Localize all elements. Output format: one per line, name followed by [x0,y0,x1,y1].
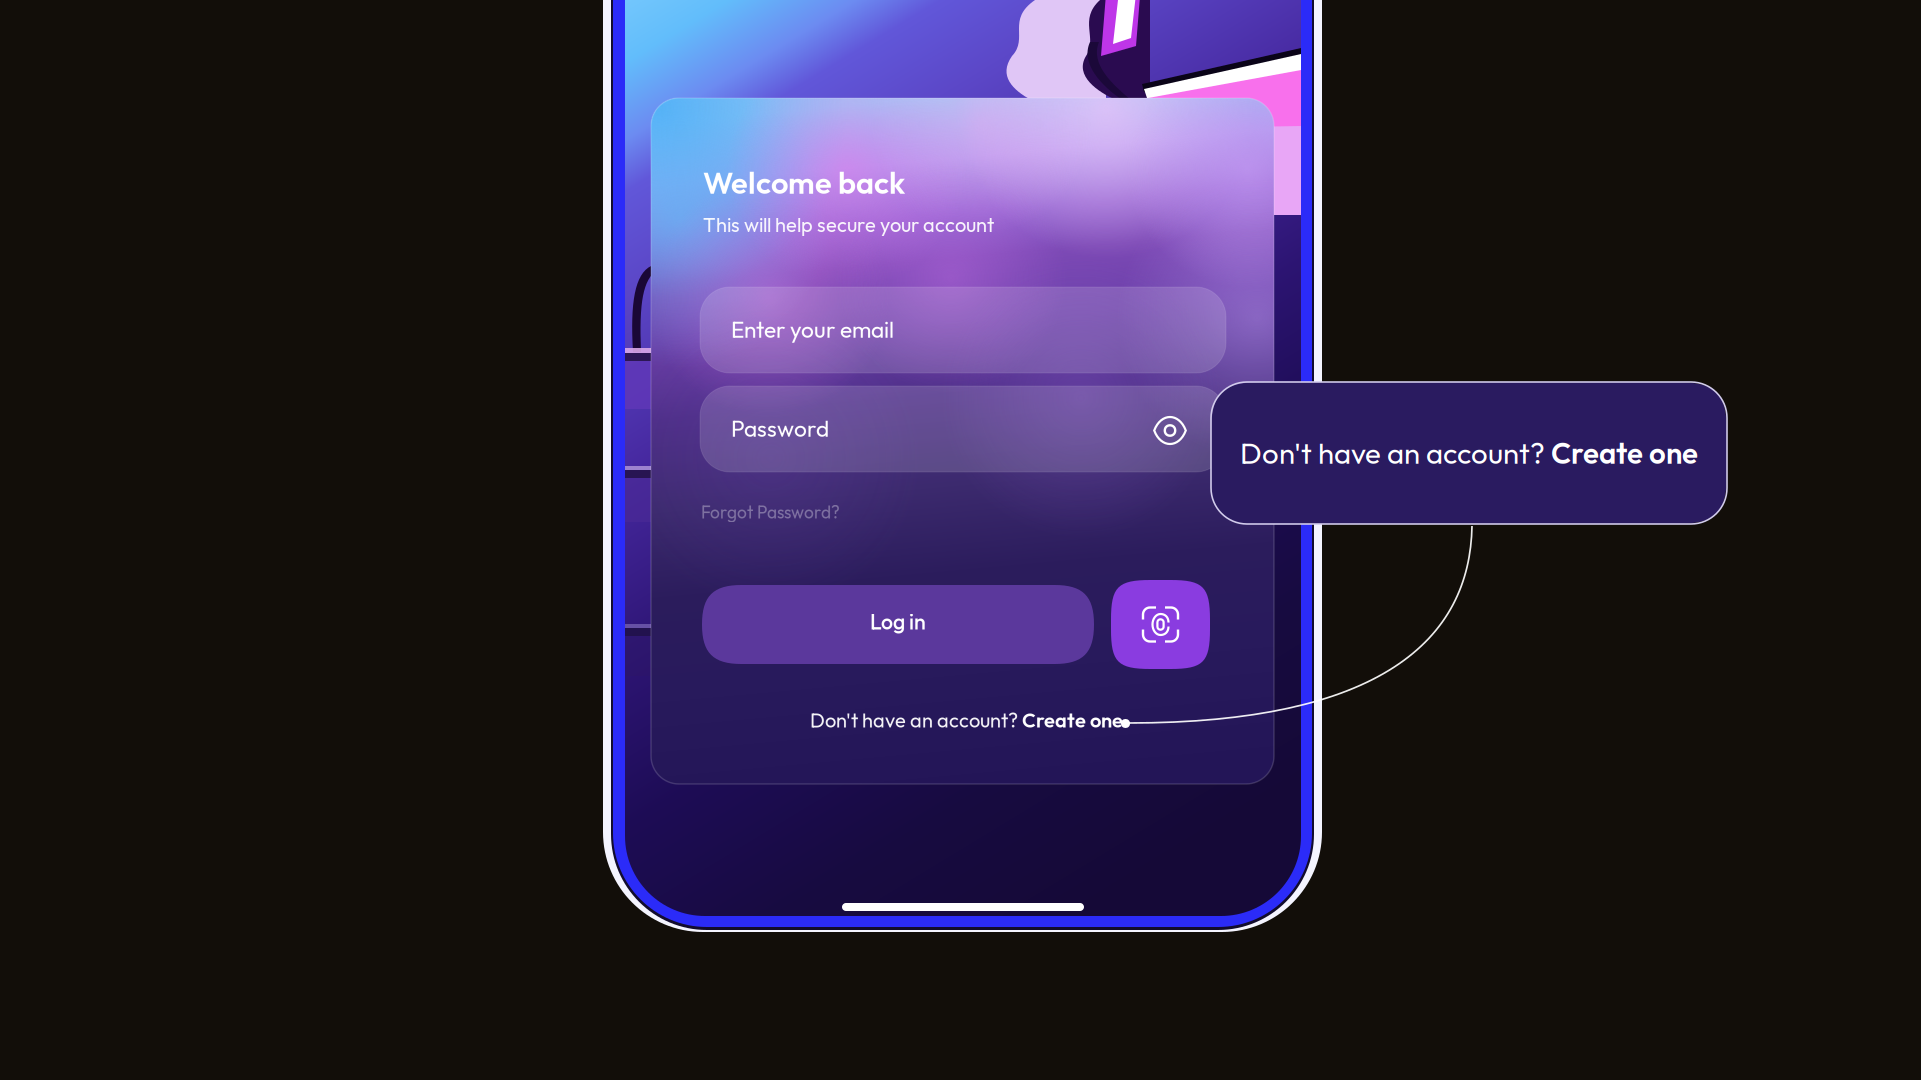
staticText: Password [731,414,829,443]
staticText: Forgot Password? [701,501,840,523]
staticText: Don't have an account? [810,707,1022,733]
button[interactable]: Don't have an account? [1211,382,1727,524]
button[interactable]: Don't have an account? [810,706,1123,734]
staticText: Log in [870,608,926,635]
staticText: Create one [1022,707,1123,733]
staticText: Don't have an account? [1240,434,1551,471]
button[interactable]: Sign in with Face ID [1111,580,1210,669]
staticText: Create one [1551,434,1698,471]
staticText: This will help secure your account [703,212,994,237]
staticText: Welcome back [703,163,905,202]
button[interactable]: Forgot Password? [701,498,861,526]
button[interactable]: Log in [702,585,1094,664]
staticText: Enter your email [731,315,894,344]
